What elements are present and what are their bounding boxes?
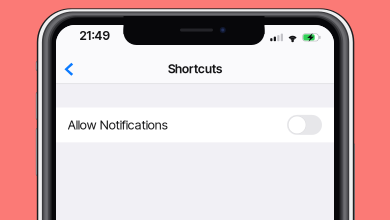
button[interactable]: Back xyxy=(58,51,79,83)
staticText: 21:49 xyxy=(79,28,109,43)
button[interactable]: Allow Notifications xyxy=(56,107,334,142)
staticText: Allow Notifications xyxy=(68,117,168,132)
staticText: Shortcuts xyxy=(168,61,222,76)
